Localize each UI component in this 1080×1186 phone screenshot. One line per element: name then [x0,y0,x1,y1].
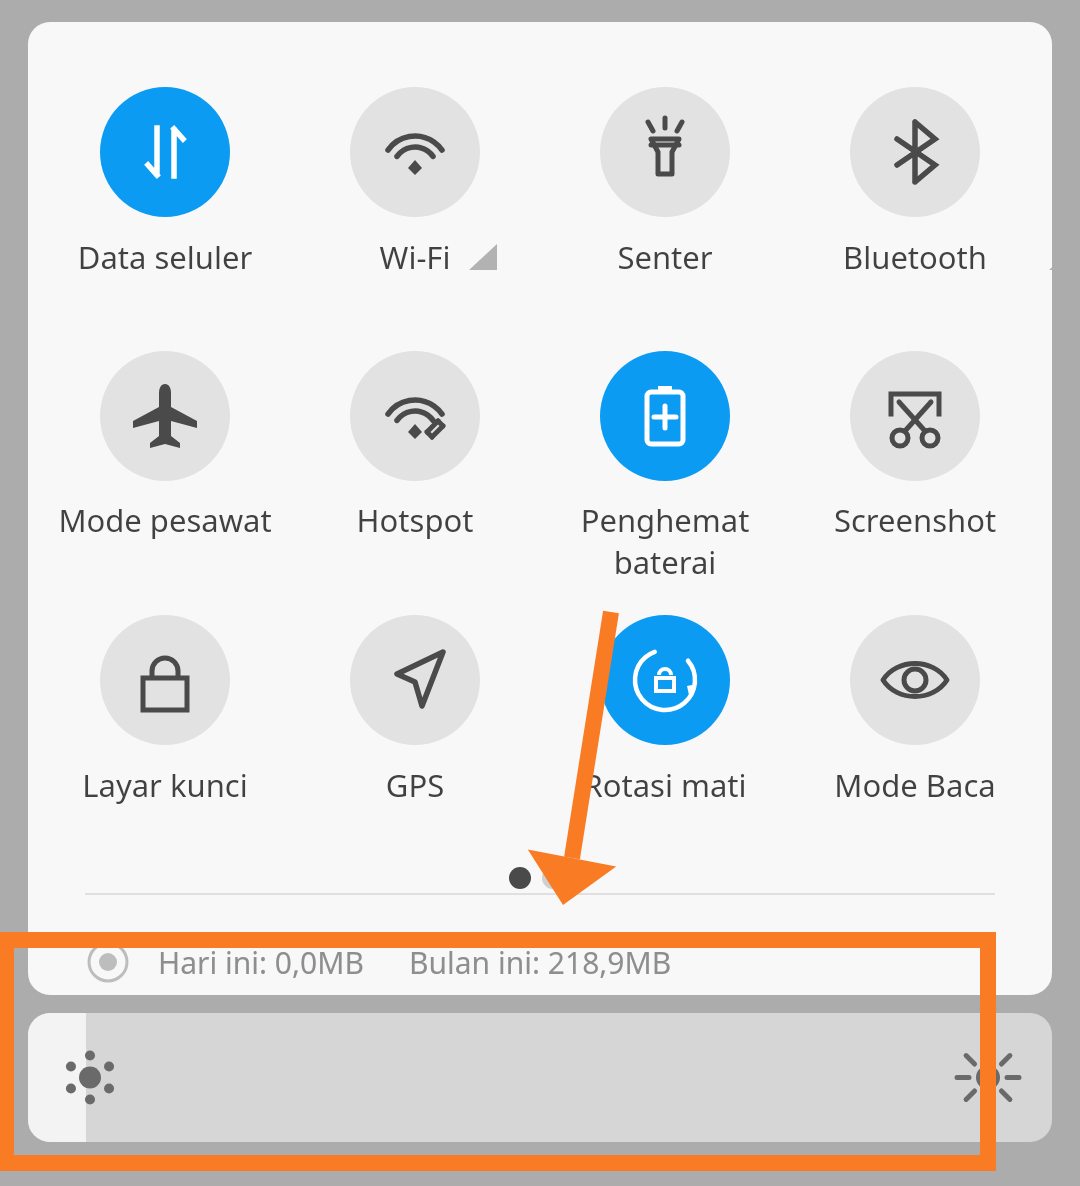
button[interactable]: Wi-Fi [297,74,533,264]
button[interactable]: Rotasi mati [547,602,783,792]
button[interactable]: Penghemat baterai [547,338,783,528]
button[interactable]: Mode Baca [797,602,1033,792]
staticText: Penghemat baterai [547,499,783,583]
button[interactable]: Hotspot [297,338,533,528]
staticText: Data seluler [47,236,283,278]
staticText: Bluetooth [797,236,1033,278]
button[interactable]: Bluetooth [797,74,1033,264]
button[interactable]: Brightness [28,1013,1052,1142]
button[interactable]: Data seluler [47,74,283,264]
staticText: GPS [297,764,533,806]
button[interactable]: GPS [297,602,533,792]
button[interactable]: Layar kunci [47,602,283,792]
button[interactable]: Senter [547,74,783,264]
staticText: Hari ini: 0,0MB [158,942,364,983]
staticText: Senter [547,236,783,278]
staticText: Rotasi mati [547,764,783,806]
button[interactable]: Mode pesawat [47,338,283,528]
staticText: Mode pesawat [47,499,283,541]
staticText: Wi-Fi [297,236,533,278]
staticText: Layar kunci [47,764,283,806]
button[interactable]: Hari ini: 0,0MB [86,922,1052,995]
staticText: Hotspot [297,499,533,541]
staticText: Screenshot [797,499,1033,541]
staticText: Bulan ini: 218,9MB [409,942,672,983]
staticText: Mode Baca [797,764,1033,806]
button[interactable]: Screenshot [797,338,1033,528]
